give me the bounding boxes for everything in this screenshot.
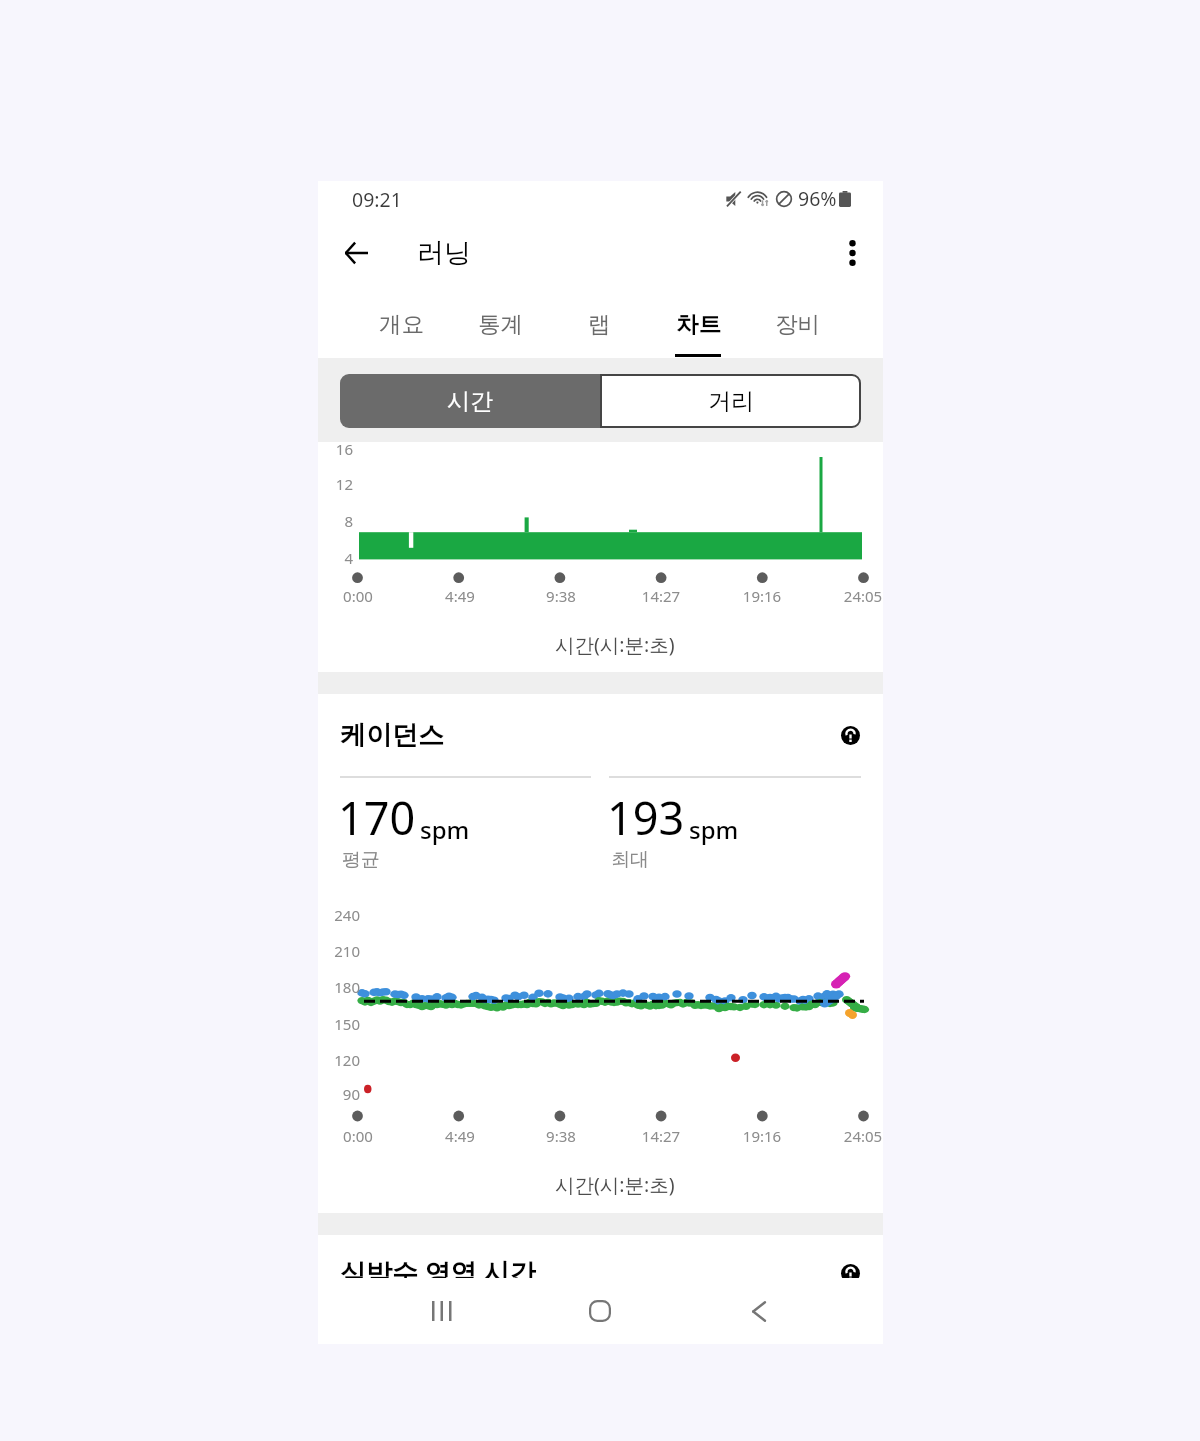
staticText: 24:05 bbox=[833, 586, 893, 606]
staticText: 4:49 bbox=[430, 1126, 490, 1146]
staticText: 210 bbox=[316, 941, 360, 961]
button[interactable]: 차트 bbox=[649, 297, 747, 358]
staticText: 9:38 bbox=[531, 1126, 591, 1146]
staticText: 0:00 bbox=[328, 586, 388, 606]
staticText: 장비 bbox=[775, 310, 820, 338]
staticText: 통계 bbox=[478, 310, 523, 338]
staticText: 120 bbox=[316, 1050, 360, 1070]
staticText: 90 bbox=[316, 1084, 360, 1104]
staticText: 시간(시:분:초) bbox=[555, 1171, 675, 1198]
staticText: 최대 bbox=[611, 848, 649, 872]
staticText: 16 bbox=[309, 439, 353, 459]
button[interactable]: Help about cadence bbox=[832, 717, 868, 753]
staticText: 24:05 bbox=[833, 1126, 893, 1146]
staticText: 평균 bbox=[342, 848, 380, 872]
button[interactable]: 장비 bbox=[748, 297, 846, 358]
button[interactable]: Help about heart rate zones bbox=[832, 1255, 868, 1291]
staticText: 시간(시:분:초) bbox=[555, 631, 675, 658]
button[interactable]: 통계 bbox=[451, 297, 549, 358]
staticText: 거리 bbox=[708, 387, 754, 416]
staticText: 개요 bbox=[379, 310, 424, 338]
staticText: 19:16 bbox=[732, 586, 792, 606]
staticText: 0:00 bbox=[328, 1126, 388, 1146]
staticText: 8 bbox=[309, 511, 353, 531]
staticText: 14:27 bbox=[631, 1126, 691, 1146]
staticText: 09:21 bbox=[352, 186, 402, 213]
staticText: spm bbox=[420, 813, 470, 846]
staticText: 케이던스 bbox=[340, 719, 444, 752]
staticText: 9:38 bbox=[531, 586, 591, 606]
staticText: 150 bbox=[316, 1014, 360, 1034]
staticText: 차트 bbox=[676, 310, 721, 338]
staticText: 14:27 bbox=[631, 586, 691, 606]
staticText: 4:49 bbox=[430, 586, 490, 606]
button[interactable]: Recent apps bbox=[416, 1285, 468, 1337]
staticText: 러닝 bbox=[417, 236, 471, 270]
button[interactable]: 랩 bbox=[550, 297, 648, 358]
button[interactable]: Back bbox=[331, 228, 381, 278]
staticText: 랩 bbox=[588, 310, 611, 338]
staticText: 19:16 bbox=[732, 1126, 792, 1146]
staticText: 193 bbox=[607, 787, 685, 848]
staticText: 180 bbox=[316, 977, 360, 997]
staticText: spm bbox=[689, 813, 739, 846]
button[interactable]: 개요 bbox=[352, 297, 450, 358]
button[interactable]: More options bbox=[828, 229, 876, 277]
staticText: 240 bbox=[316, 905, 360, 925]
button[interactable]: 시간 bbox=[340, 374, 600, 428]
button[interactable]: Home bbox=[574, 1285, 626, 1337]
staticText: 96% bbox=[798, 185, 837, 212]
staticText: 4 bbox=[309, 548, 353, 568]
staticText: 12 bbox=[309, 474, 353, 494]
staticText: 심박수 영역 시간 bbox=[340, 1254, 536, 1290]
staticText: 170 bbox=[338, 787, 416, 848]
button[interactable]: Back bbox=[732, 1285, 784, 1337]
staticText: 시간 bbox=[447, 387, 493, 416]
button[interactable]: 거리 bbox=[600, 374, 861, 428]
